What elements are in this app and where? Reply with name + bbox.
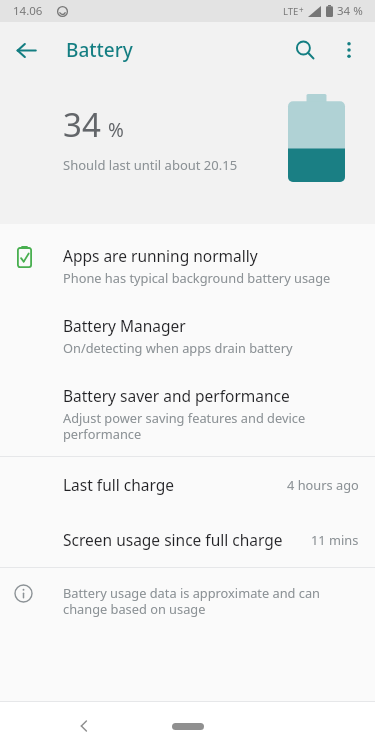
button[interactable]: Screen usage since full charge xyxy=(0,512,375,567)
staticText: 11 mins xyxy=(311,531,359,548)
staticText: Adjust power saving features and device … xyxy=(63,409,353,443)
button[interactable]: Apps are running normally xyxy=(0,231,375,299)
staticText: 34 % xyxy=(337,3,363,19)
staticText: Battery saver and performance xyxy=(63,385,290,406)
staticText: Battery Manager xyxy=(63,315,186,336)
staticText: LTE xyxy=(283,5,299,18)
button[interactable]: Battery Manager xyxy=(0,299,375,369)
button[interactable]: More options xyxy=(327,28,371,72)
staticText: % xyxy=(108,117,124,143)
staticText: Screen usage since full charge xyxy=(63,529,311,550)
staticText: Battery usage data is approximate and ca… xyxy=(63,584,353,618)
staticText: Apps are running normally xyxy=(63,245,258,266)
button[interactable]: Home xyxy=(172,709,204,744)
button[interactable]: Back xyxy=(6,30,46,70)
staticText: Last full charge xyxy=(63,474,287,495)
staticText: 34 xyxy=(63,102,101,147)
staticText: Phone has typical background battery usa… xyxy=(63,269,331,286)
staticText: Battery xyxy=(66,37,133,63)
staticText: On/detecting when apps drain battery xyxy=(63,339,293,356)
button[interactable]: Last full charge xyxy=(0,457,375,512)
staticText: 4 hours ago xyxy=(287,476,359,493)
button[interactable]: Search xyxy=(283,28,327,72)
staticText: Should last until about 20.15 xyxy=(63,156,238,174)
staticText: + xyxy=(299,4,304,15)
staticText: 14.06 xyxy=(13,3,43,19)
button[interactable]: Back xyxy=(66,708,102,744)
button[interactable]: Battery saver and performance xyxy=(0,369,375,456)
